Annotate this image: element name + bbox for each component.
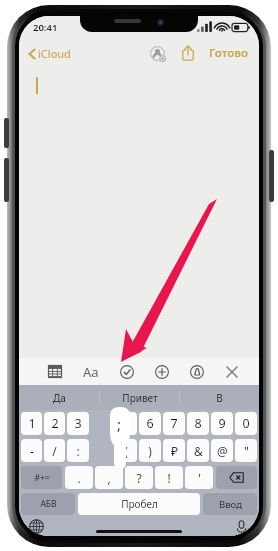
staticText: ; bbox=[117, 414, 122, 434]
button[interactable]: ) bbox=[139, 439, 161, 462]
button[interactable]: / bbox=[44, 439, 65, 462]
button[interactable]: " bbox=[235, 439, 257, 462]
button[interactable]: Backspace bbox=[216, 466, 257, 489]
staticText: ! bbox=[167, 470, 171, 486]
staticText: @ bbox=[217, 443, 228, 459]
button[interactable]: 2 bbox=[44, 412, 65, 435]
staticText: 6 bbox=[146, 415, 154, 432]
button[interactable]: close bbox=[214, 358, 249, 385]
staticText: ) bbox=[148, 443, 152, 459]
button[interactable]: Add people bbox=[146, 42, 168, 64]
button[interactable]: ( bbox=[115, 439, 137, 462]
staticText: ( bbox=[124, 443, 128, 459]
staticText: Aa bbox=[83, 363, 99, 381]
button[interactable]: plus bbox=[144, 358, 179, 385]
button[interactable]: Привет bbox=[100, 385, 179, 410]
staticText: Ввод bbox=[219, 498, 242, 511]
button[interactable]: Change keyboard bbox=[26, 517, 46, 536]
button[interactable]: 9 bbox=[211, 412, 233, 435]
button[interactable]: ? bbox=[125, 466, 153, 489]
staticText: 8 bbox=[194, 415, 202, 432]
button[interactable]: & bbox=[187, 439, 209, 462]
staticText: ? bbox=[136, 470, 142, 486]
staticText: & bbox=[194, 443, 203, 459]
button[interactable]: check bbox=[109, 358, 144, 385]
button[interactable]: . bbox=[65, 466, 93, 489]
button[interactable]: ! bbox=[155, 466, 183, 489]
staticText: . bbox=[77, 470, 81, 486]
staticText: ' bbox=[198, 470, 201, 486]
staticText: #+= bbox=[34, 472, 50, 484]
button[interactable]: 1 bbox=[21, 412, 42, 435]
staticText: / bbox=[52, 443, 57, 459]
staticText: 9 bbox=[218, 415, 226, 432]
button[interactable]: ' bbox=[185, 466, 213, 489]
staticText: В bbox=[216, 391, 223, 405]
button[interactable]: АБВ bbox=[21, 493, 75, 515]
button[interactable]: Dictation bbox=[231, 517, 251, 536]
staticText: Привет bbox=[122, 391, 158, 405]
button[interactable]: pen bbox=[179, 358, 214, 385]
staticText: - bbox=[30, 443, 34, 459]
staticText: 2 bbox=[51, 415, 59, 432]
button[interactable]: Share bbox=[177, 42, 199, 64]
staticText: АБВ bbox=[40, 498, 57, 510]
button[interactable]: 7 bbox=[163, 412, 185, 435]
button[interactable]: 6 bbox=[139, 412, 161, 435]
button[interactable]: Пробел bbox=[78, 493, 200, 515]
button[interactable]: #+= bbox=[21, 466, 62, 489]
staticText: 3 bbox=[74, 415, 82, 432]
button[interactable]: 3 bbox=[67, 412, 89, 435]
button[interactable]: 5 bbox=[115, 412, 137, 435]
button[interactable]: Готово bbox=[205, 41, 252, 65]
button[interactable]: , bbox=[95, 466, 123, 489]
staticText: Готово bbox=[209, 45, 248, 61]
button[interactable]: iCloud bbox=[19, 42, 77, 65]
staticText: ₽ bbox=[171, 443, 178, 459]
staticText: 0 bbox=[242, 415, 250, 432]
staticText: " bbox=[244, 443, 249, 459]
button[interactable]: В bbox=[180, 385, 259, 410]
staticText: : bbox=[76, 443, 80, 459]
staticText: , bbox=[107, 470, 111, 486]
button[interactable]: 8 bbox=[187, 412, 209, 435]
button[interactable]: : bbox=[67, 439, 89, 462]
button[interactable]: 0 bbox=[235, 412, 257, 435]
button[interactable]: ₽ bbox=[163, 439, 185, 462]
button[interactable]: table bbox=[37, 358, 73, 385]
button[interactable]: @ bbox=[211, 439, 233, 462]
button[interactable]: aa bbox=[73, 358, 109, 385]
staticText: 20:41 bbox=[33, 21, 58, 34]
staticText: 1 bbox=[28, 415, 36, 432]
staticText: iCloud bbox=[38, 46, 71, 61]
button[interactable]: Да bbox=[19, 385, 99, 410]
button[interactable]: Ввод bbox=[203, 493, 257, 515]
button[interactable]: - bbox=[21, 439, 42, 462]
staticText: Пробел bbox=[121, 497, 158, 511]
staticText: 7 bbox=[170, 415, 178, 432]
staticText: Да bbox=[53, 391, 66, 405]
